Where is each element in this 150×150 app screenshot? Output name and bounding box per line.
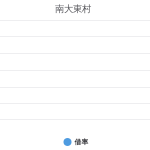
- staticText: 南大東村: [55, 3, 91, 15]
- button[interactable]: 借率: [1, 135, 150, 149]
- staticText: 借率: [74, 138, 88, 146]
